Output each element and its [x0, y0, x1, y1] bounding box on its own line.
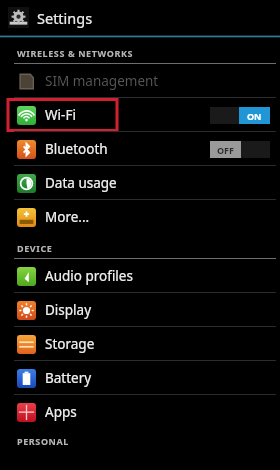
- button[interactable]: Display: [0, 293, 280, 327]
- staticText: OFF: [217, 144, 235, 156]
- button[interactable]: More...: [0, 200, 280, 234]
- staticText: Bluetooth: [45, 140, 210, 158]
- staticText: Audio profiles: [45, 267, 280, 285]
- staticText: WIRELESS & NETWORKS: [17, 47, 134, 59]
- staticText: Wi-Fi: [45, 106, 210, 124]
- staticText: Settings: [37, 8, 93, 28]
- staticText: PERSONAL: [17, 435, 69, 447]
- button[interactable]: Battery: [0, 361, 280, 395]
- button[interactable]: Data usage: [0, 166, 280, 200]
- staticText: Display: [45, 301, 280, 319]
- button[interactable]: Settings: [0, 0, 280, 35]
- button[interactable]: Audio profiles: [0, 259, 280, 293]
- staticText: Storage: [45, 335, 280, 353]
- staticText: Battery: [45, 369, 280, 387]
- staticText: DEVICE: [17, 242, 53, 254]
- button[interactable]: ON: [210, 107, 270, 124]
- staticText: Apps: [45, 403, 280, 421]
- button[interactable]: Apps: [0, 395, 280, 429]
- staticText: SIM management: [45, 72, 280, 90]
- staticText: More...: [45, 208, 280, 226]
- staticText: Data usage: [45, 174, 280, 192]
- button[interactable]: Bluetooth: [0, 132, 280, 166]
- button[interactable]: OFF: [210, 141, 270, 158]
- button[interactable]: SIM management: [0, 64, 280, 98]
- staticText: ON: [247, 110, 262, 122]
- button[interactable]: Storage: [0, 327, 280, 361]
- button[interactable]: Wi-Fi: [0, 98, 280, 132]
- other: Settings: [8, 7, 29, 28]
